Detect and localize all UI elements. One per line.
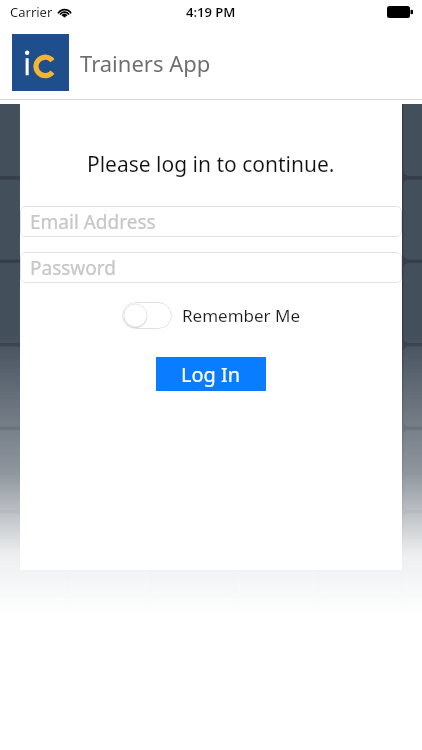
staticText: Password [30, 255, 116, 281]
staticText: Remember Me [182, 304, 301, 327]
button[interactable]: Log In [156, 357, 266, 391]
button[interactable]: Remember Me [122, 302, 301, 329]
button[interactable]: Password [20, 252, 402, 283]
staticText: Trainers App [80, 48, 211, 78]
button[interactable]: Email Address [20, 206, 402, 237]
staticText: Log In [181, 361, 241, 388]
staticText: Carrier [10, 3, 53, 21]
staticText: Please log in to continue. [87, 150, 335, 179]
staticText: 4:19 PM [186, 3, 236, 21]
staticText: Email Address [30, 209, 156, 235]
